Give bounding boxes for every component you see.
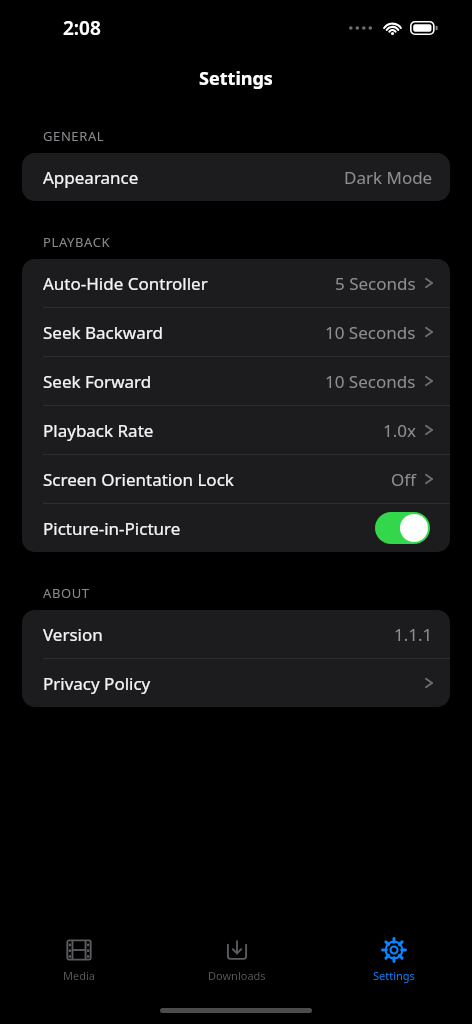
staticText: Dark Mode bbox=[344, 166, 433, 189]
staticText: 10 Seconds bbox=[325, 370, 416, 393]
button[interactable]: Seek Backward bbox=[22, 308, 450, 356]
button[interactable]: Privacy Policy bbox=[22, 659, 450, 707]
staticText: 1.0x bbox=[383, 419, 416, 442]
button[interactable]: Screen Orientation Lock bbox=[22, 455, 450, 503]
staticText: Screen Orientation Lock bbox=[43, 468, 234, 491]
staticText: Picture-in-Picture bbox=[43, 517, 181, 540]
button[interactable]: Version bbox=[22, 610, 450, 658]
staticText: 1.1.1 bbox=[394, 623, 433, 646]
staticText: Privacy Policy bbox=[43, 672, 151, 695]
staticText: Settings bbox=[373, 968, 415, 983]
staticText: Auto-Hide Controller bbox=[43, 272, 208, 295]
button[interactable]: Auto-Hide Controller bbox=[22, 259, 450, 307]
staticText: Downloads bbox=[208, 968, 266, 983]
button[interactable]: Downloads bbox=[158, 929, 315, 991]
staticText: Playback Rate bbox=[43, 419, 154, 442]
staticText: 5 Seconds bbox=[335, 272, 416, 295]
button[interactable]: Picture-in-Picture toggle bbox=[375, 512, 430, 544]
staticText: Media bbox=[63, 968, 95, 983]
staticText: Appearance bbox=[43, 166, 139, 189]
staticText: Seek Backward bbox=[43, 321, 163, 344]
staticText: PLAYBACK bbox=[43, 233, 111, 251]
button[interactable]: Playback Rate bbox=[22, 406, 450, 454]
staticText: 2:08 bbox=[63, 15, 101, 41]
button[interactable]: Media bbox=[0, 929, 158, 991]
staticText: Version bbox=[43, 623, 103, 646]
button[interactable]: Appearance bbox=[22, 153, 450, 201]
staticText: GENERAL bbox=[43, 127, 105, 145]
staticText: Settings bbox=[199, 66, 273, 91]
button[interactable]: Picture-in-Picture bbox=[22, 504, 450, 552]
button[interactable]: Settings bbox=[315, 929, 472, 991]
staticText: Off bbox=[391, 468, 416, 491]
staticText: ABOUT bbox=[43, 584, 90, 602]
button[interactable]: Seek Forward bbox=[22, 357, 450, 405]
staticText: 10 Seconds bbox=[325, 321, 416, 344]
staticText: Seek Forward bbox=[43, 370, 152, 393]
